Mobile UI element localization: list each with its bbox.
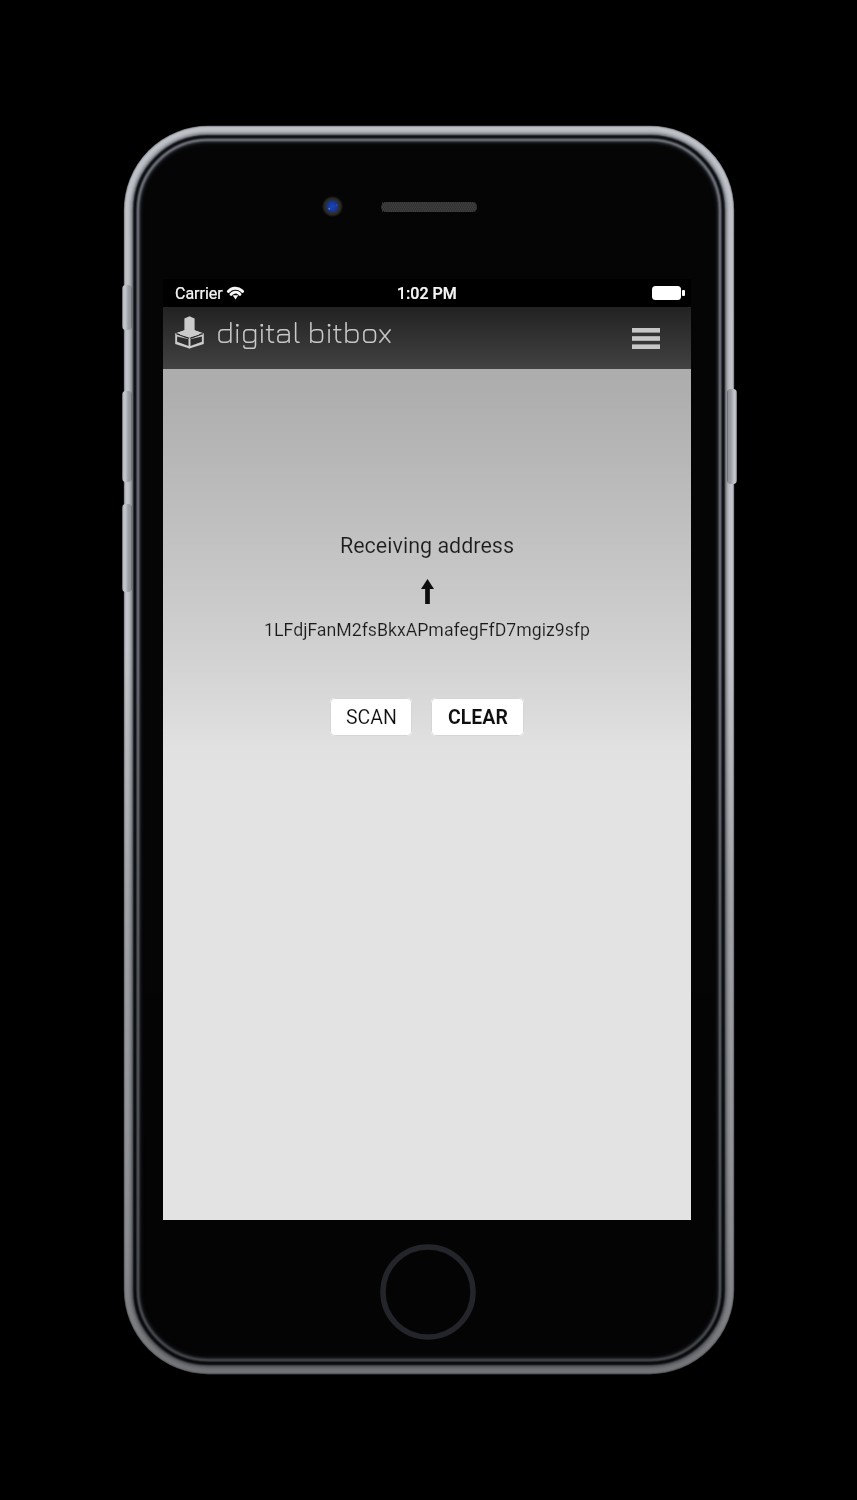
staticText: CLEAR (448, 706, 508, 729)
staticText: 1LFdjFanM2fsBkxAPmafegFfD7mgiz9sfp (163, 620, 691, 641)
button[interactable]: Menu (624, 316, 668, 360)
button[interactable]: CLEAR (431, 698, 524, 736)
button[interactable]: SCAN (330, 698, 412, 736)
staticText: Receiving address (163, 533, 691, 558)
staticText: 1:02 PM (397, 284, 457, 303)
staticText: Carrier (175, 284, 223, 303)
staticText: digital bitbox (216, 314, 393, 349)
staticText: SCAN (346, 706, 397, 729)
